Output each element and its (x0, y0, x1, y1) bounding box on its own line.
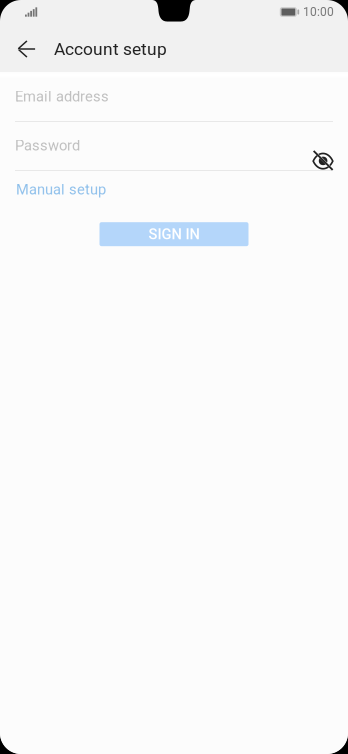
button[interactable]: Manual setup (16, 181, 106, 198)
staticText: Manual setup (16, 181, 106, 198)
staticText: 10:00 (303, 5, 334, 19)
staticText: Password (15, 137, 80, 154)
staticText: Account setup (54, 39, 167, 59)
button[interactable]: Back (0, 26, 53, 72)
button[interactable]: SIGN IN (99, 222, 248, 246)
staticText: SIGN IN (148, 226, 199, 243)
button[interactable]: Show password (306, 147, 340, 177)
staticText: Email address (15, 88, 109, 105)
